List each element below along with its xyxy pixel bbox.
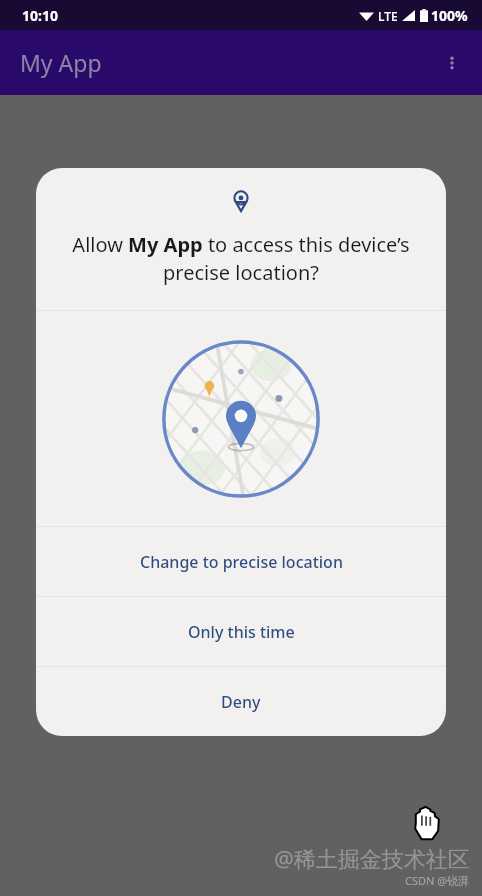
staticText: CSDN @锐湃 bbox=[405, 873, 470, 888]
staticText: Deny bbox=[221, 691, 261, 713]
button[interactable]: Only this time bbox=[36, 597, 446, 666]
staticText: Change to precise location bbox=[140, 551, 343, 573]
staticText: 10:10 bbox=[22, 6, 58, 25]
button[interactable]: More options bbox=[432, 43, 472, 83]
staticText: Only this time bbox=[188, 621, 295, 643]
staticText: @稀土掘金技术社区 bbox=[274, 843, 470, 873]
staticText: 100% bbox=[431, 6, 468, 25]
staticText: Allow My App to access this device’s pre… bbox=[62, 231, 420, 286]
button[interactable]: Change to precise location bbox=[36, 527, 446, 596]
staticText: My App bbox=[20, 47, 102, 78]
staticText: LTE bbox=[378, 8, 398, 24]
button[interactable]: Deny bbox=[36, 667, 446, 736]
